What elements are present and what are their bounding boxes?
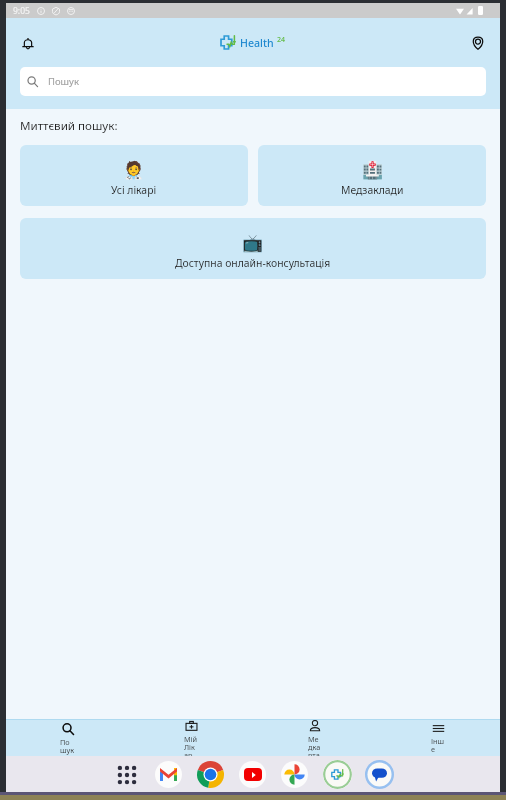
- staticText: Миттєвий пошук:: [20, 118, 118, 134]
- staticText: 📺: [242, 233, 264, 253]
- staticText: Доступна онлайн-консультація: [175, 256, 331, 270]
- staticText: Інш е: [431, 736, 445, 754]
- button[interactable]: Notifications: [12, 27, 44, 59]
- button[interactable]: Інш е: [376, 720, 500, 756]
- staticText: 24: [277, 35, 286, 45]
- button[interactable]: Ме дка рта: [252, 720, 376, 756]
- button[interactable]: YouTube: [239, 761, 266, 788]
- button[interactable]: Google Photos: [281, 761, 308, 788]
- button[interactable]: 🧑‍⚕️: [20, 145, 248, 206]
- staticText: Ме дка рта: [308, 734, 321, 756]
- button[interactable]: Chrome: [197, 761, 224, 788]
- button[interactable]: Gmail: [155, 761, 182, 788]
- staticText: Пошук: [48, 75, 79, 88]
- button[interactable]: 📺: [20, 218, 486, 279]
- staticText: Усі лікарі: [111, 183, 157, 197]
- button[interactable]: По шук: [6, 720, 129, 756]
- button[interactable]: Location: [462, 27, 494, 59]
- button[interactable]: Health 24: [323, 760, 352, 789]
- button[interactable]: Пошук: [20, 67, 486, 96]
- staticText: Мій Лік ар: [184, 734, 198, 756]
- staticText: 9:05: [13, 5, 30, 17]
- staticText: 🏥: [362, 160, 384, 180]
- button[interactable]: Messages: [365, 760, 394, 789]
- staticText: Health: [240, 36, 274, 50]
- button[interactable]: Мій Лік ар: [129, 720, 252, 756]
- staticText: 🧑‍⚕️: [123, 160, 145, 180]
- button[interactable]: 🏥: [258, 145, 486, 206]
- staticText: По шук: [60, 737, 75, 755]
- button[interactable]: All apps: [113, 761, 141, 789]
- staticText: Медзаклади: [341, 183, 404, 197]
